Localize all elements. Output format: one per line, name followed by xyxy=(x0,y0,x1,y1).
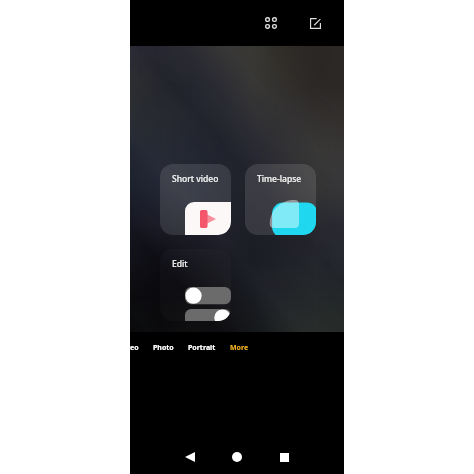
button[interactable]: Portrait xyxy=(181,337,223,359)
button[interactable]: Edit xyxy=(301,9,329,37)
staticText: More xyxy=(230,343,249,353)
button[interactable]: Camera modes xyxy=(257,9,285,37)
button[interactable]: Back xyxy=(176,443,204,471)
staticText: Short video xyxy=(172,173,219,185)
staticText: Photo xyxy=(153,343,174,353)
button[interactable]: Time-lapse xyxy=(245,164,316,235)
button[interactable]: Video xyxy=(130,337,146,359)
staticText: Video xyxy=(130,343,139,353)
button[interactable]: Recent apps xyxy=(270,443,298,471)
button[interactable]: Photo xyxy=(146,337,181,359)
button[interactable]: Short video xyxy=(160,164,231,235)
button[interactable]: More xyxy=(223,337,256,359)
staticText: Time-lapse xyxy=(257,173,302,185)
button[interactable]: Edit xyxy=(160,249,231,321)
staticText: Edit xyxy=(172,258,188,270)
button[interactable]: Home xyxy=(223,443,251,471)
staticText: Portrait xyxy=(188,343,216,353)
